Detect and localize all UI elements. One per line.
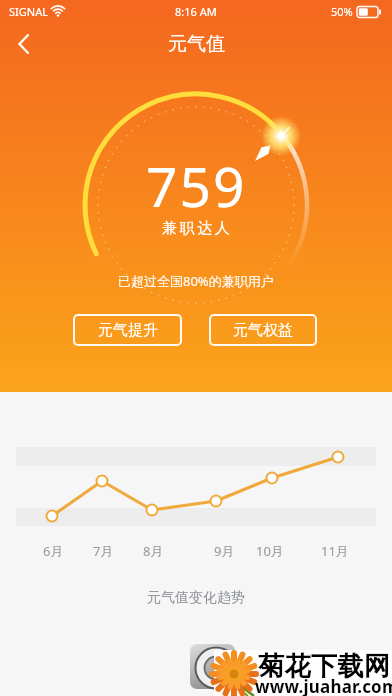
staticText: 8:16 AM (175, 4, 217, 19)
staticText: 9月 (214, 542, 235, 560)
staticText: 元气值变化趋势 (147, 589, 245, 607)
staticText: 7月 (93, 542, 114, 560)
staticText: 10月 (256, 542, 284, 560)
staticText: SIGNAL (9, 4, 48, 19)
staticText: 兼职达人 (161, 219, 231, 238)
staticText: 6月 (43, 542, 64, 560)
staticText: 50% (331, 4, 353, 19)
button[interactable]: 元气权益 (209, 314, 317, 346)
staticText: 759 (146, 148, 247, 223)
staticText: 菊花下载网 (258, 650, 391, 683)
staticText: 元气权益 (233, 321, 293, 340)
staticText: 元气提升 (98, 321, 158, 340)
staticText: 已超过全国80%的兼职用户 (118, 272, 274, 290)
staticText: www.juahar.com (255, 675, 392, 696)
staticText: 8月 (143, 542, 164, 560)
staticText: 11月 (321, 542, 349, 560)
button[interactable] (8, 28, 40, 60)
button[interactable]: 元气提升 (73, 314, 182, 346)
staticText: 元气值 (168, 32, 225, 56)
